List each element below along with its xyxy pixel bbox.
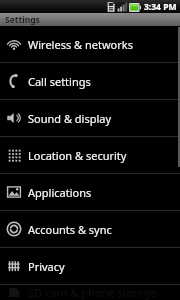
button[interactable]: Wireless & networks (0, 26, 180, 62)
button[interactable]: Call settings (0, 63, 180, 99)
staticText: Sound & display (28, 111, 112, 126)
staticText: Applications (28, 185, 92, 200)
staticText: Wireless & networks (28, 37, 133, 52)
button[interactable]: SD card & phone storage (0, 285, 180, 300)
staticText: Location & security (28, 148, 127, 163)
staticText: Call settings (28, 74, 91, 89)
staticText: SD card & phone storage (28, 285, 157, 300)
staticText: Accounts & sync (28, 222, 112, 237)
button[interactable]: Sound & display (0, 100, 180, 136)
button[interactable]: Applications (0, 174, 180, 210)
button[interactable]: Privacy (0, 248, 180, 284)
staticText: 3:34 PM (144, 1, 177, 13)
button[interactable]: Accounts & sync (0, 211, 180, 247)
button[interactable]: Location & security (0, 137, 180, 173)
staticText: Settings (5, 14, 40, 26)
staticText: Privacy (28, 259, 65, 274)
